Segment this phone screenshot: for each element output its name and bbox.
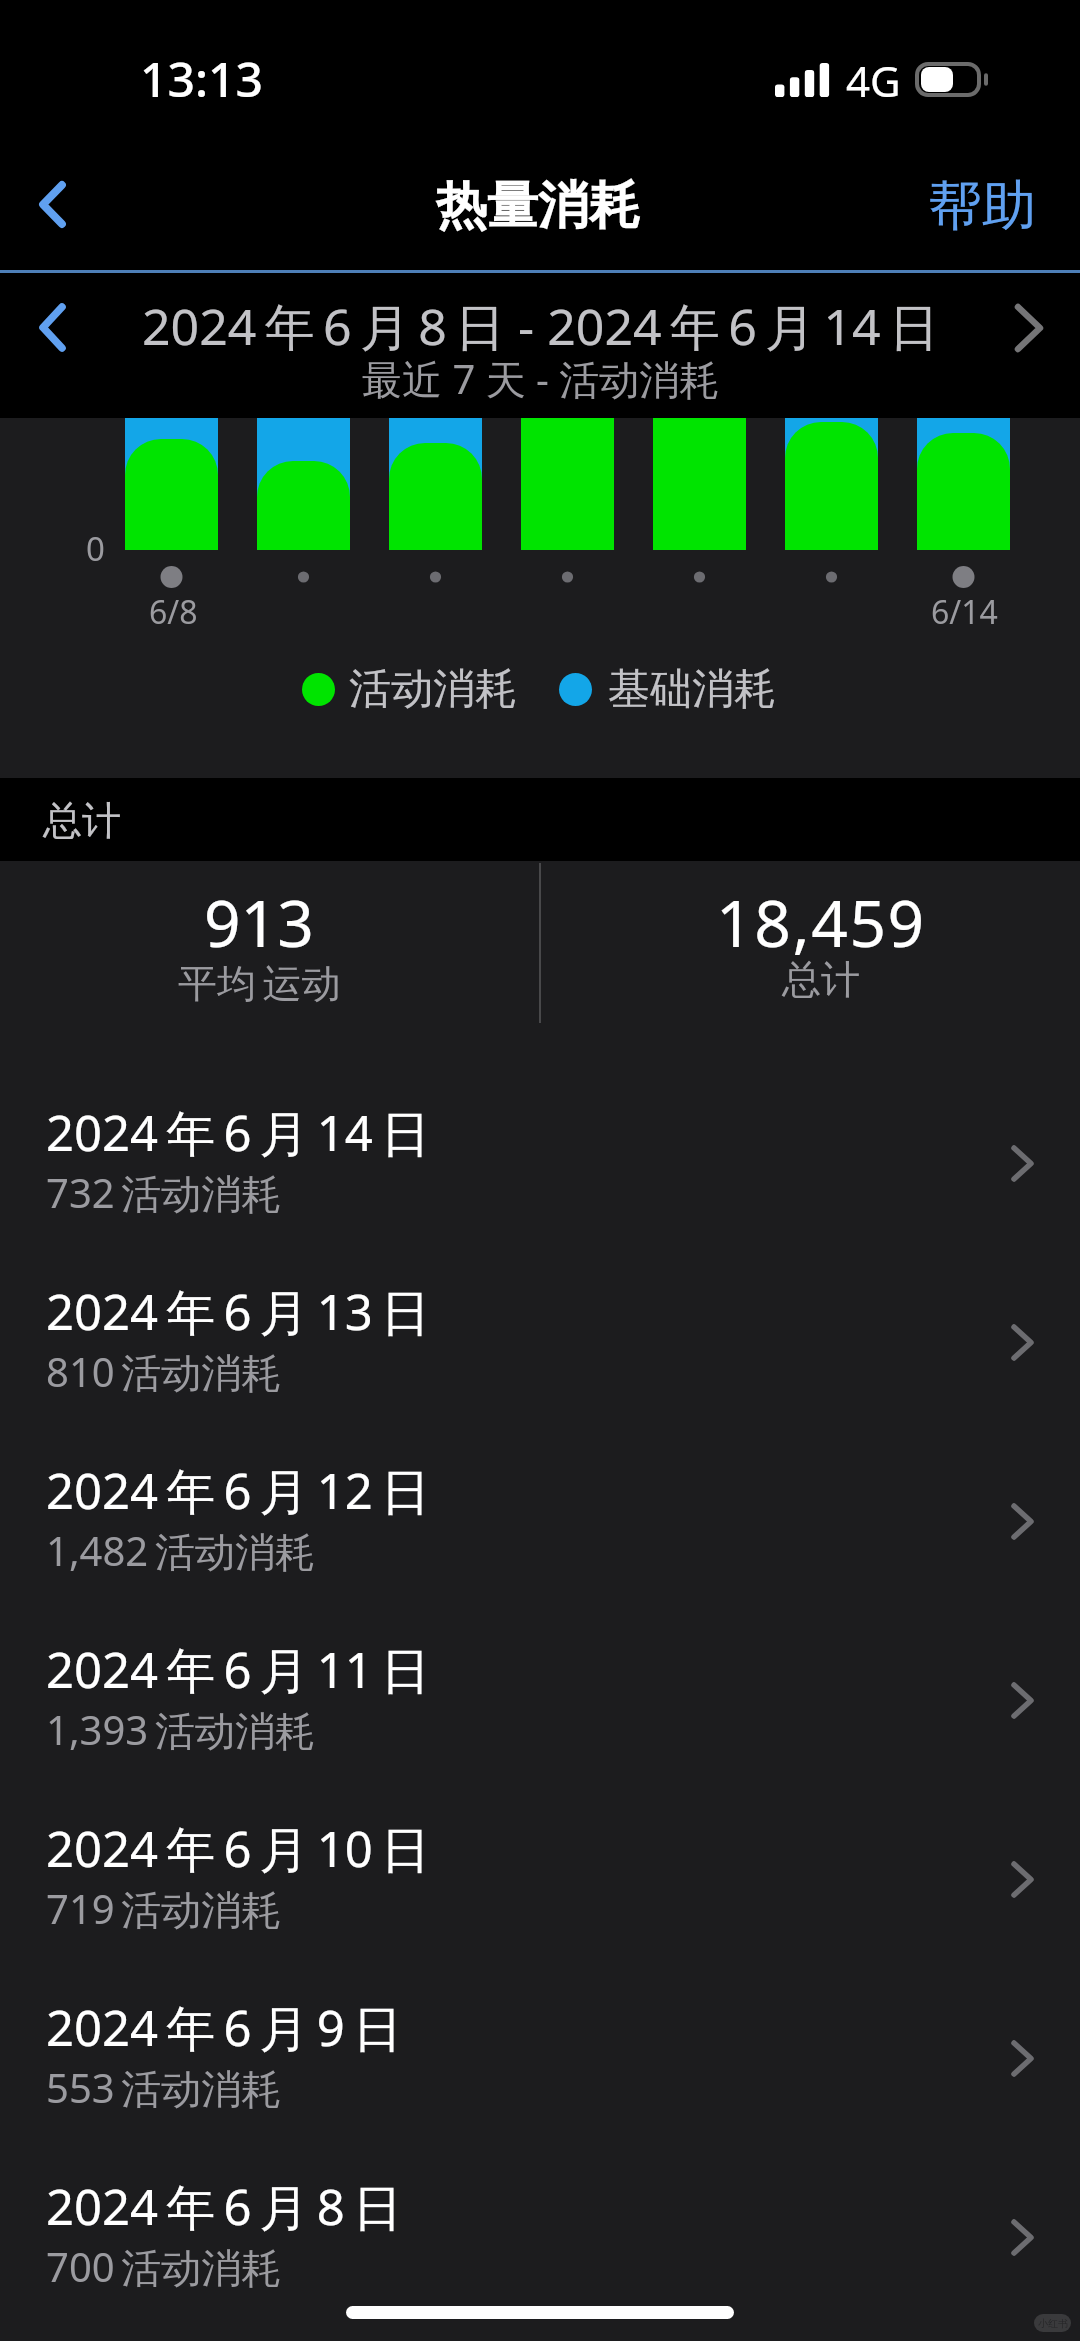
staticText: 913 <box>204 879 314 966</box>
staticText: 553 活动消耗 <box>46 2060 282 2115</box>
staticText: 13:13 <box>140 46 263 111</box>
staticText: 1,482 活动消耗 <box>46 1523 315 1578</box>
staticText: 700 活动消耗 <box>46 2239 282 2294</box>
staticText: 4G <box>846 52 901 109</box>
button[interactable]: 2024 年 6 月 12 日 <box>0 1441 1080 1620</box>
staticText: 1,393 活动消耗 <box>46 1702 315 1757</box>
staticText: 基础消耗 <box>608 663 776 716</box>
button[interactable]: 帮助 <box>888 145 1080 270</box>
staticText: 2024 年 6 月 9 日 <box>46 1994 402 2061</box>
button[interactable]: 2024 年 6 月 14 日 <box>0 1083 1080 1262</box>
staticText: 18,459 <box>716 879 926 966</box>
button[interactable]: Previous week <box>14 277 90 377</box>
button[interactable]: 2024 年 6 月 11 日 <box>0 1620 1080 1799</box>
staticText: 帮助 <box>928 172 1036 240</box>
button[interactable]: 18,459 <box>540 861 1080 1083</box>
staticText: 0 <box>86 526 105 571</box>
staticText: 热量消耗 <box>436 174 640 238</box>
staticText: 2024 年 6 月 8 日 - 2024 年 6 月 14 日 <box>142 292 939 360</box>
staticText: 2024 年 6 月 8 日 <box>46 2173 402 2240</box>
staticText: 2024 年 6 月 10 日 <box>46 1815 430 1882</box>
button[interactable]: 2024 年 6 月 10 日 <box>0 1799 1080 1978</box>
staticText: 总计 <box>782 955 860 1004</box>
staticText: 小红书 <box>1038 2317 1068 2330</box>
staticText: 810 活动消耗 <box>46 1344 282 1399</box>
staticText: 2024 年 6 月 12 日 <box>46 1457 430 1524</box>
staticText: 活动消耗 <box>349 663 517 716</box>
staticText: 2024 年 6 月 14 日 <box>46 1099 430 1166</box>
staticText: 2024 年 6 月 11 日 <box>46 1636 430 1703</box>
staticText: 6/14 <box>931 590 998 634</box>
staticText: 2024 年 6 月 13 日 <box>46 1278 430 1345</box>
button[interactable]: 913 <box>0 861 540 1083</box>
staticText: 732 活动消耗 <box>46 1165 282 1220</box>
button[interactable]: 2024 年 6 月 8 日 <box>0 2157 1080 2336</box>
staticText: 6/8 <box>149 590 198 634</box>
button[interactable]: 2024 年 6 月 13 日 <box>0 1262 1080 1441</box>
button[interactable]: 2024 年 6 月 9 日 <box>0 1978 1080 2157</box>
staticText: 719 活动消耗 <box>46 1881 282 1936</box>
button[interactable]: Next week <box>991 278 1067 378</box>
staticText: 最近 7 天 - 活动消耗 <box>362 351 720 406</box>
button[interactable]: Back <box>0 152 108 264</box>
staticText: 总计 <box>43 796 121 845</box>
staticText: 平均 运动 <box>178 955 341 1008</box>
